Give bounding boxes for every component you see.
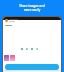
button[interactable]: Send (5, 64, 59, 70)
button[interactable]: Photo 2 (10, 55, 15, 61)
staticText: Share images and more easily (19, 4, 45, 12)
button[interactable]: Photo 1 (4, 55, 9, 61)
